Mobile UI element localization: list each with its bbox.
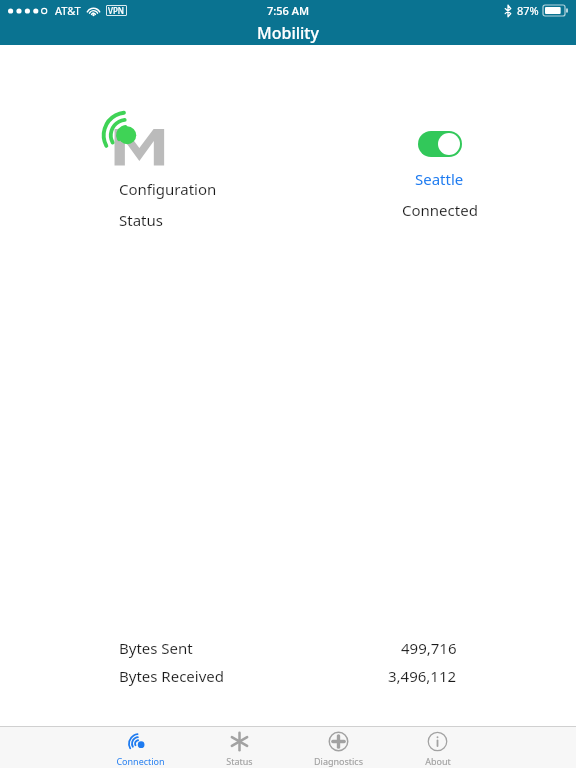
staticText: Bytes Received xyxy=(119,666,224,686)
staticText: Bytes Sent xyxy=(119,638,193,658)
staticText: 499,716 xyxy=(401,638,457,658)
staticText: Configuration xyxy=(119,179,217,199)
staticText: 3,496,112 xyxy=(388,666,457,686)
staticText: Status xyxy=(119,210,163,230)
staticText: Connected xyxy=(402,200,478,220)
staticText: AT&T xyxy=(55,3,81,18)
staticText: 87% xyxy=(517,3,539,18)
staticText: VPN xyxy=(108,5,125,16)
staticText: Mobility xyxy=(257,22,319,44)
button[interactable]: Connection toggle, on xyxy=(418,131,462,157)
button[interactable]: Status xyxy=(190,727,289,768)
button[interactable]: About xyxy=(388,727,487,768)
staticText: 7:56 AM xyxy=(267,3,310,18)
staticText: Diagnostics xyxy=(314,755,363,767)
button[interactable]: Diagnostics xyxy=(289,727,388,768)
button[interactable]: Connection xyxy=(90,727,190,768)
staticText: About xyxy=(425,755,451,767)
staticText: Status xyxy=(226,755,253,767)
staticText: Connection xyxy=(116,755,165,767)
staticText: Seattle xyxy=(415,169,464,189)
